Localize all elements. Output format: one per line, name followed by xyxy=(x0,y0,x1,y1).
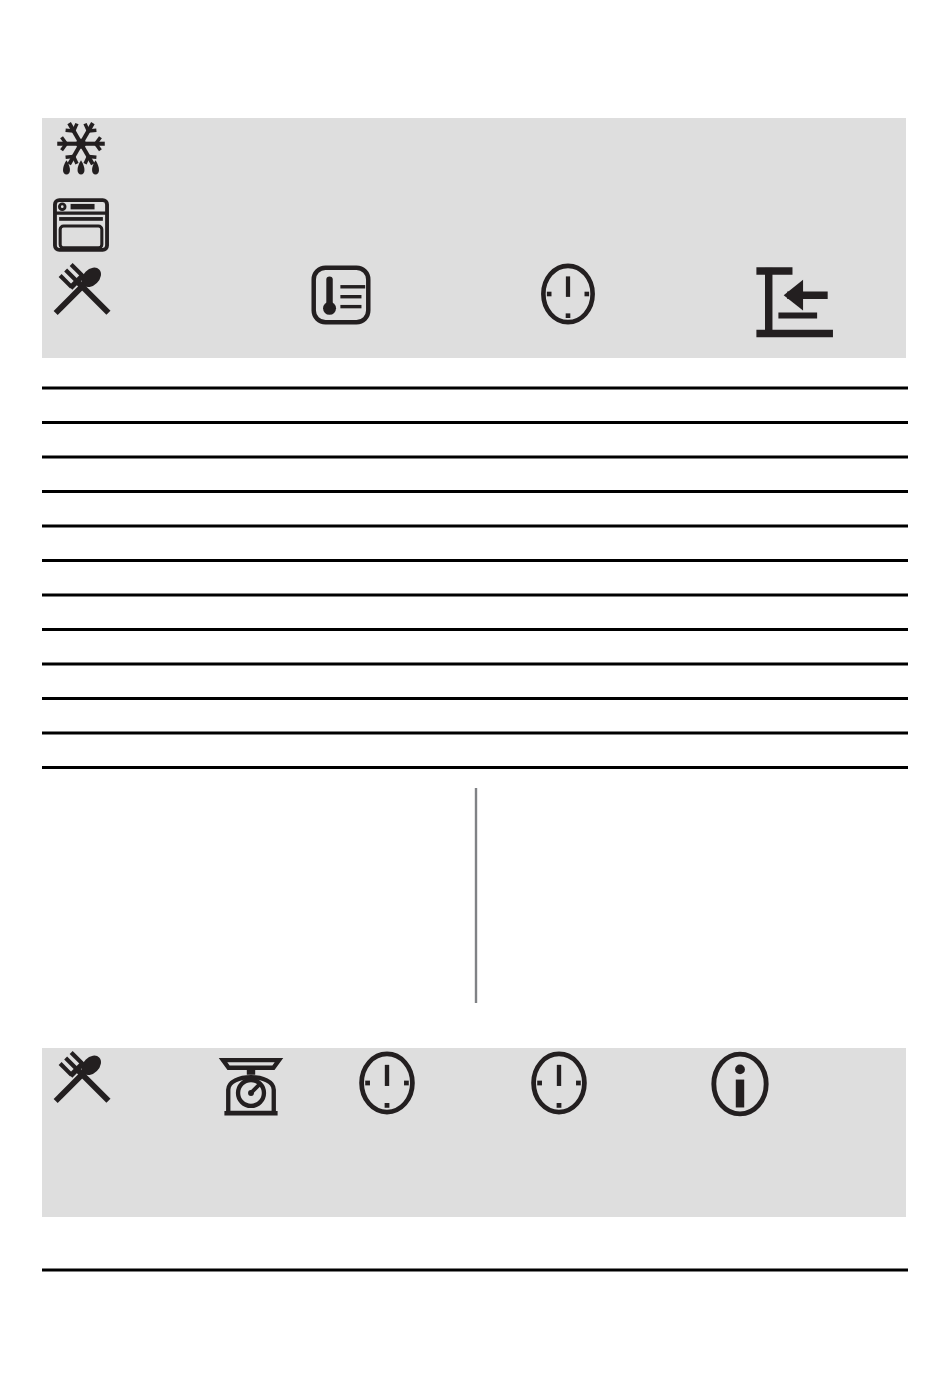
button[interactable]: Timer xyxy=(536,262,600,326)
button[interactable]: Oven xyxy=(50,194,112,256)
button[interactable]: Temperature probe xyxy=(310,264,372,326)
button[interactable]: Defrost xyxy=(48,116,114,182)
button[interactable]: Information xyxy=(706,1050,774,1118)
button[interactable]: Timer xyxy=(354,1050,420,1116)
button[interactable]: Insert shelf xyxy=(752,260,840,348)
button[interactable]: Cooking xyxy=(48,262,116,330)
button[interactable]: Cooking xyxy=(48,1050,116,1118)
button[interactable]: Weight xyxy=(216,1052,286,1122)
button[interactable]: Timer xyxy=(526,1050,592,1116)
